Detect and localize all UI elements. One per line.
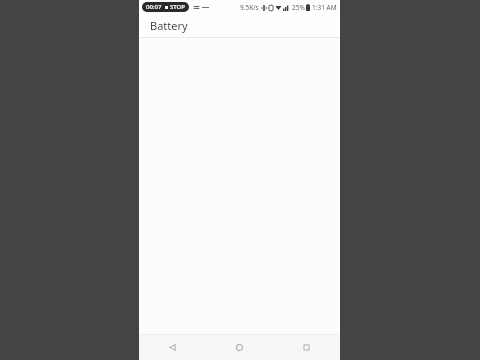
staticText: 25% [292, 3, 305, 12]
staticText: 00:07 [146, 3, 162, 11]
button[interactable]: Back [139, 335, 206, 360]
button[interactable]: 00:07 [142, 2, 189, 12]
button[interactable]: Recents [273, 335, 340, 360]
staticText: STOP [170, 3, 185, 11]
staticText: 9.5K/s [240, 3, 259, 12]
staticText: Battery [150, 18, 188, 33]
staticText: 1:31 AM [312, 3, 337, 12]
button[interactable]: Home [206, 335, 273, 360]
